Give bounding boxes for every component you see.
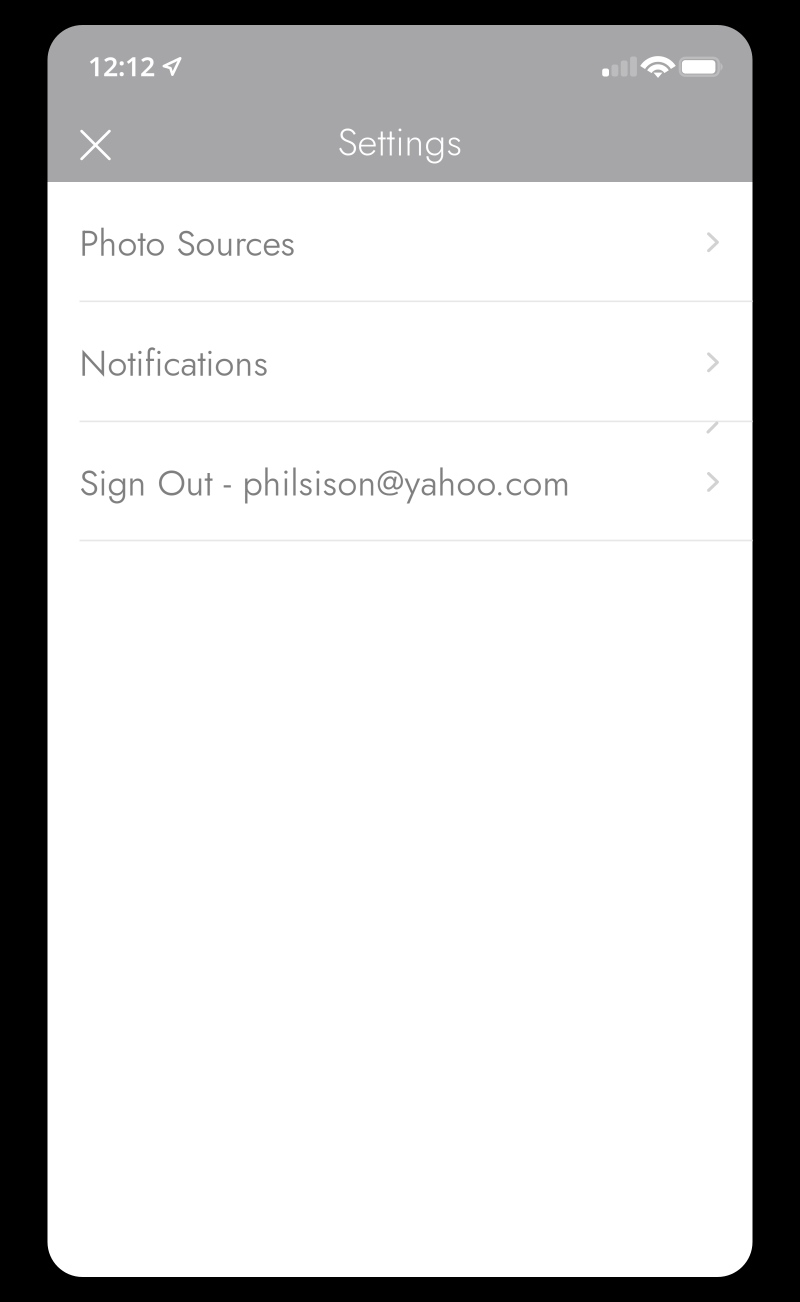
button[interactable]: Close: [63, 108, 127, 176]
staticText: Photo Sources: [79, 217, 295, 269]
button[interactable]: Photo Sources: [47, 182, 752, 302]
button[interactable]: Notifications: [47, 302, 752, 422]
staticText: Settings: [337, 114, 462, 170]
staticText: Notifications: [79, 337, 268, 389]
button[interactable]: Sign Out - philsison@yahoo.com: [47, 422, 752, 541]
staticText: 12:12: [88, 48, 155, 84]
staticText: Sign Out - philsison@yahoo.com: [79, 457, 569, 509]
